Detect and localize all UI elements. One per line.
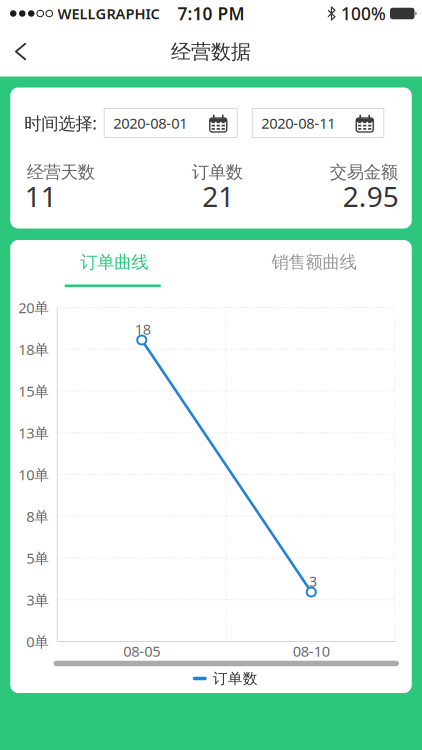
staticText: 2020-08-01 [113,113,187,133]
staticText: 18 [135,319,151,339]
staticText: 5单 [26,548,49,568]
staticText: 20单 [18,298,49,317]
staticText: 100% [341,2,386,25]
button[interactable]: 2020-08-01 [104,108,237,137]
staticText: 经营数据 [171,39,251,64]
staticText: 15单 [18,381,49,401]
staticText: 7:10 PM [177,2,244,25]
staticText: 10单 [18,465,49,484]
staticText: 销售额曲线 [271,252,356,273]
button[interactable]: 订单曲线 [10,240,211,284]
staticText: 08-05 [123,641,160,661]
staticText: 2.95 [343,177,399,215]
staticText: 订单数 [213,669,258,687]
button[interactable]: 2020-08-11 [252,108,384,137]
staticText: 8单 [26,506,49,526]
button[interactable]: 销售额曲线 [211,240,412,284]
staticText: 交易金额 [330,162,398,183]
staticText: 3单 [26,590,49,609]
staticText: 订单曲线 [80,252,148,273]
staticText: WELLGRAPHIC [57,4,159,23]
staticText: 经营天数 [27,162,95,183]
staticText: 订单数 [192,162,243,183]
button[interactable]: Back [0,36,26,68]
staticText: 0单 [26,632,49,651]
staticText: 11 [25,177,57,215]
staticText: 21 [202,177,234,215]
staticText: 2020-08-11 [261,113,335,133]
staticText: 08-10 [293,641,330,661]
staticText: 13单 [18,423,49,442]
staticText: 时间选择: [24,111,97,134]
staticText: 3 [309,571,317,591]
staticText: 18单 [18,339,49,359]
